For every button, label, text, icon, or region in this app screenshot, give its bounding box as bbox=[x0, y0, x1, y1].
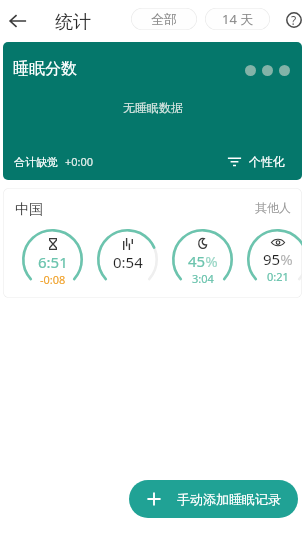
staticText: 手动添加睡眠记录 bbox=[177, 491, 281, 507]
button[interactable]: 个性化 bbox=[227, 154, 285, 169]
staticText: 统计 bbox=[55, 11, 91, 34]
staticText: 其他人 bbox=[255, 200, 291, 215]
staticText: 14 天 bbox=[222, 10, 254, 28]
staticText: +0:00 bbox=[65, 154, 94, 169]
staticText: ? bbox=[291, 12, 297, 28]
staticText: 0:54 bbox=[113, 252, 143, 272]
staticText: 无睡眠数据 bbox=[123, 100, 183, 115]
button[interactable]: 14 天 bbox=[205, 8, 270, 30]
button[interactable]: 手动添加睡眠记录 bbox=[129, 480, 298, 518]
staticText: 6:51 bbox=[38, 252, 68, 272]
staticText: 个性化 bbox=[249, 154, 285, 169]
staticText: 睡眠分数 bbox=[13, 59, 77, 79]
staticText: 0:21 bbox=[267, 269, 289, 284]
button[interactable]: Help bbox=[282, 8, 305, 32]
staticText: 中国 bbox=[15, 201, 43, 219]
button[interactable]: Back bbox=[3, 6, 33, 36]
staticText: 45% bbox=[188, 251, 218, 271]
staticText: 3:04 bbox=[192, 271, 214, 286]
button[interactable]: More options bbox=[245, 65, 290, 76]
staticText: 全部 bbox=[151, 11, 177, 27]
staticText: -0:08 bbox=[40, 272, 66, 287]
button[interactable]: 全部 bbox=[131, 8, 197, 30]
staticText: 95% bbox=[263, 249, 293, 269]
staticText: 合计缺觉 bbox=[14, 155, 58, 169]
